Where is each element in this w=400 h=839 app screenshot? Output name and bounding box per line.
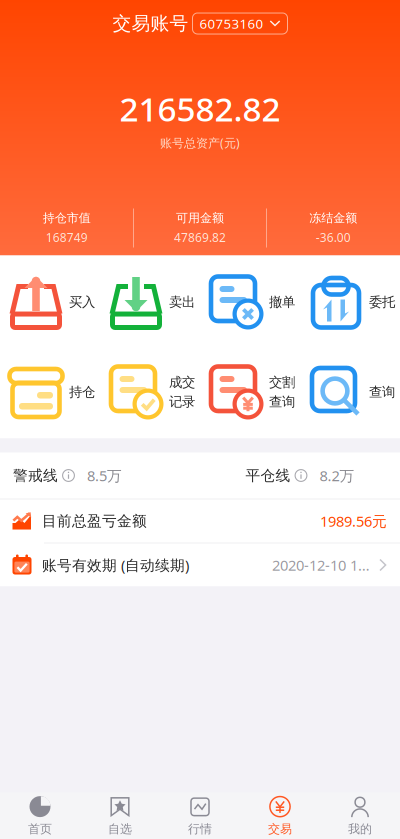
button[interactable]: 行情 [160, 792, 240, 839]
button[interactable]: 首页 [0, 792, 80, 839]
staticText: 撤单 [269, 294, 295, 310]
staticText: 交割 [269, 374, 295, 390]
staticText: 持仓市值 [43, 211, 91, 225]
staticText: 8.2万 [319, 466, 354, 485]
staticText: 行情 [188, 822, 212, 836]
staticText: 我的 [348, 822, 372, 836]
staticText: 卖出 [169, 294, 195, 310]
button[interactable]: 平仓线 [200, 452, 400, 498]
staticText: 2020-12-10 1… [272, 555, 370, 575]
staticText: 首页 [28, 822, 52, 836]
staticText: 60753160 [199, 15, 263, 32]
staticText: 委托 [369, 294, 395, 310]
button[interactable]: 60753160 [192, 13, 287, 34]
staticText: 自选 [108, 822, 132, 836]
button[interactable]: 交易 [240, 792, 320, 839]
button[interactable]: 卖出 [100, 257, 200, 347]
button[interactable]: 持仓 [0, 347, 100, 437]
staticText: 账号总资产(元) [160, 135, 240, 151]
staticText: 交易 [268, 822, 292, 836]
staticText: -36.00 [316, 229, 351, 245]
staticText: 成交 [169, 374, 195, 390]
staticText: 查询 [269, 393, 295, 410]
button[interactable]: 目前总盈亏金额 [0, 499, 400, 542]
button[interactable]: 交割 [200, 347, 300, 437]
staticText: 目前总盈亏金额 [42, 512, 147, 530]
button[interactable]: 我的 [320, 792, 400, 839]
button[interactable]: 账号有效期 (自动续期) [0, 543, 400, 586]
staticText: 交易账号 [112, 12, 188, 35]
staticText: 查询 [369, 384, 395, 400]
staticText: 记录 [169, 393, 195, 410]
staticText: 1989.56元 [320, 511, 387, 531]
staticText: 账号有效期 (自动续期) [42, 555, 189, 575]
button[interactable]: 撤单 [200, 257, 300, 347]
staticText: 168749 [46, 229, 88, 245]
staticText: 买入 [69, 294, 95, 310]
staticText: 持仓 [69, 384, 95, 400]
button[interactable]: 自选 [80, 792, 160, 839]
staticText: 8.5万 [87, 466, 122, 485]
button[interactable]: 委托 [300, 257, 400, 347]
staticText: 冻结金额 [309, 211, 357, 225]
staticText: 警戒线 [13, 466, 58, 484]
staticText: 可用金额 [176, 211, 224, 225]
button[interactable]: 买入 [0, 257, 100, 347]
button[interactable]: 成交 [100, 347, 200, 437]
staticText: 平仓线 [245, 466, 290, 484]
staticText: 47869.82 [174, 229, 226, 245]
staticText: 216582.82 [119, 86, 280, 131]
button[interactable]: 查询 [300, 347, 400, 437]
button[interactable]: 警戒线 [0, 452, 200, 498]
